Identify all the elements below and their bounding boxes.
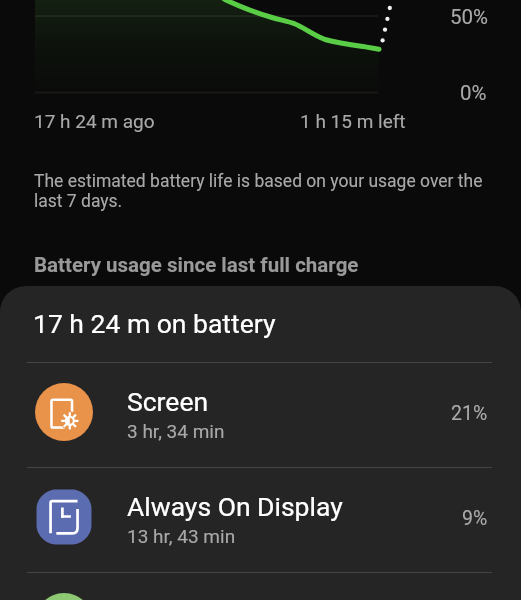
staticText: Screen	[127, 386, 209, 417]
staticText: 9%	[462, 507, 488, 530]
staticText: 17 h 24 m on battery	[33, 308, 276, 339]
staticText: 21%	[451, 402, 488, 425]
staticText: Always On Display	[127, 491, 343, 522]
button[interactable]: Android System	[0, 573, 521, 600]
staticText: 0%	[460, 81, 487, 105]
staticText: 3 hr, 34 min	[127, 420, 225, 442]
button[interactable]: Screen	[0, 363, 521, 467]
staticText: The estimated battery life is based on y…	[34, 171, 489, 211]
staticText: Battery usage since last full charge	[34, 253, 359, 277]
button[interactable]: Always On Display	[0, 468, 521, 572]
staticText: 13 hr, 43 min	[127, 525, 236, 547]
staticText: 1 h 15 m left	[300, 110, 406, 132]
staticText: 50%	[450, 5, 489, 29]
staticText: 17 h 24 m ago	[34, 110, 155, 132]
